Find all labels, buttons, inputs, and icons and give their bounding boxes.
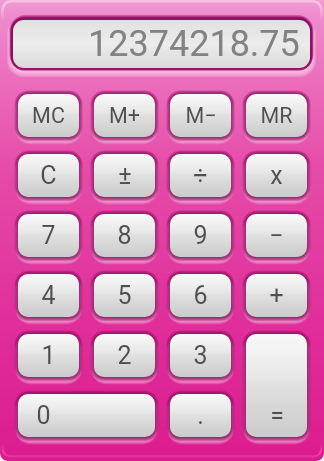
staticText: . (197, 401, 204, 430)
button[interactable]: = (246, 334, 307, 437)
staticText: 9 (193, 221, 208, 250)
staticText: 0 (36, 401, 51, 430)
button[interactable]: C (18, 154, 79, 197)
staticText: + (269, 281, 284, 310)
button[interactable]: 4 (18, 274, 79, 317)
staticText: C (40, 161, 57, 190)
button[interactable]: 8 (94, 214, 155, 257)
button[interactable]: 6 (170, 274, 231, 317)
button[interactable]: Calculator display (13, 20, 310, 68)
staticText: 12374218.75 (88, 23, 300, 65)
staticText: 6 (193, 281, 208, 310)
button[interactable]: 9 (170, 214, 231, 257)
staticText: MC (32, 103, 65, 128)
button[interactable]: 1 (18, 334, 79, 377)
button[interactable]: − (246, 214, 307, 257)
staticText: 3 (193, 341, 208, 370)
staticText: 8 (117, 221, 132, 250)
button[interactable]: M+ (94, 94, 155, 137)
staticText: 4 (41, 281, 56, 310)
button[interactable]: 5 (94, 274, 155, 317)
button[interactable]: 0 (18, 394, 155, 437)
staticText: x (270, 161, 283, 190)
button[interactable]: M− (170, 94, 231, 137)
button[interactable]: 2 (94, 334, 155, 377)
button[interactable]: ± (94, 154, 155, 197)
button[interactable]: MC (18, 94, 79, 137)
staticText: ± (118, 161, 132, 190)
button[interactable]: . (170, 394, 231, 437)
staticText: M− (185, 103, 217, 128)
staticText: M+ (109, 103, 140, 128)
button[interactable]: 3 (170, 334, 231, 377)
button[interactable]: x (246, 154, 307, 197)
button[interactable]: 7 (18, 214, 79, 257)
staticText: = (270, 401, 284, 430)
staticText: 7 (41, 221, 56, 250)
button[interactable]: + (246, 274, 307, 317)
staticText: − (269, 221, 284, 250)
staticText: 1 (41, 341, 56, 370)
button[interactable]: ÷ (170, 154, 231, 197)
button[interactable]: MR (246, 94, 307, 137)
staticText: 5 (117, 281, 132, 310)
staticText: ÷ (193, 161, 208, 190)
staticText: MR (260, 103, 293, 128)
staticText: 2 (117, 341, 132, 370)
